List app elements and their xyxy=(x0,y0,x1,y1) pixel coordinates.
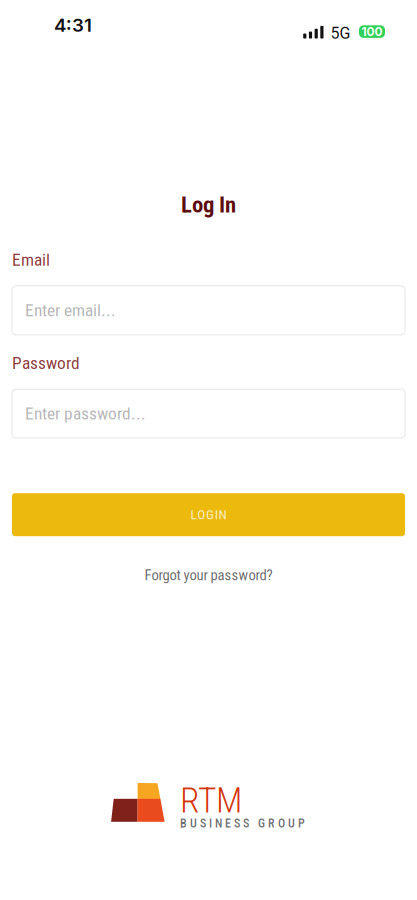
button[interactable]: LOGIN xyxy=(12,493,405,536)
button[interactable]: Forgot your password? xyxy=(134,562,282,589)
staticText: 5G xyxy=(330,24,350,43)
staticText: LOGIN xyxy=(190,507,227,522)
staticText: Enter email... xyxy=(25,300,116,320)
staticText: Email xyxy=(12,250,50,270)
staticText: Password xyxy=(12,353,80,373)
staticText: 100 xyxy=(361,24,382,39)
staticText: B U S I N E S S G R O U P xyxy=(180,816,305,831)
staticText: Log In xyxy=(181,191,236,218)
staticText: Forgot your password? xyxy=(144,567,272,584)
staticText: 4:31 xyxy=(54,14,92,36)
staticText: Enter password... xyxy=(25,403,146,424)
staticText: RTM xyxy=(180,780,242,821)
